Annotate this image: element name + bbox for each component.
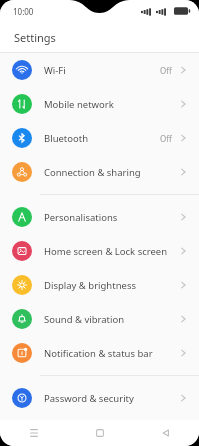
button[interactable]: Personalisations: [0, 200, 199, 234]
button[interactable]: Back: [133, 420, 199, 446]
staticText: Home screen & Lock screen: [44, 245, 179, 258]
staticText: Wi-Fi: [44, 64, 160, 77]
staticText: Off: [160, 133, 172, 144]
staticText: Off: [160, 65, 172, 76]
button[interactable]: Home: [67, 420, 133, 446]
button[interactable]: Notification & status bar: [0, 336, 199, 370]
staticText: Personalisations: [44, 211, 179, 224]
button[interactable]: Password & security: [0, 381, 199, 415]
button[interactable]: Recent apps: [0, 420, 67, 446]
button[interactable]: Display & brightness: [0, 268, 199, 302]
staticText: Display & brightness: [44, 279, 179, 292]
staticText: 10:00: [13, 6, 34, 17]
staticText: Connection & sharing: [44, 166, 179, 179]
staticText: Mobile network: [44, 98, 179, 111]
staticText: Sound & vibration: [44, 313, 179, 326]
staticText: Password & security: [44, 392, 179, 405]
staticText: Notification & status bar: [44, 347, 179, 360]
staticText: Bluetooth: [44, 132, 160, 145]
button[interactable]: Bluetooth: [0, 121, 199, 155]
button[interactable]: Sound & vibration: [0, 302, 199, 336]
button[interactable]: Home screen & Lock screen: [0, 234, 199, 268]
staticText: Settings: [14, 30, 56, 45]
button[interactable]: Wi-Fi: [0, 53, 199, 87]
button[interactable]: Connection & sharing: [0, 155, 199, 189]
button[interactable]: Mobile network: [0, 87, 199, 121]
